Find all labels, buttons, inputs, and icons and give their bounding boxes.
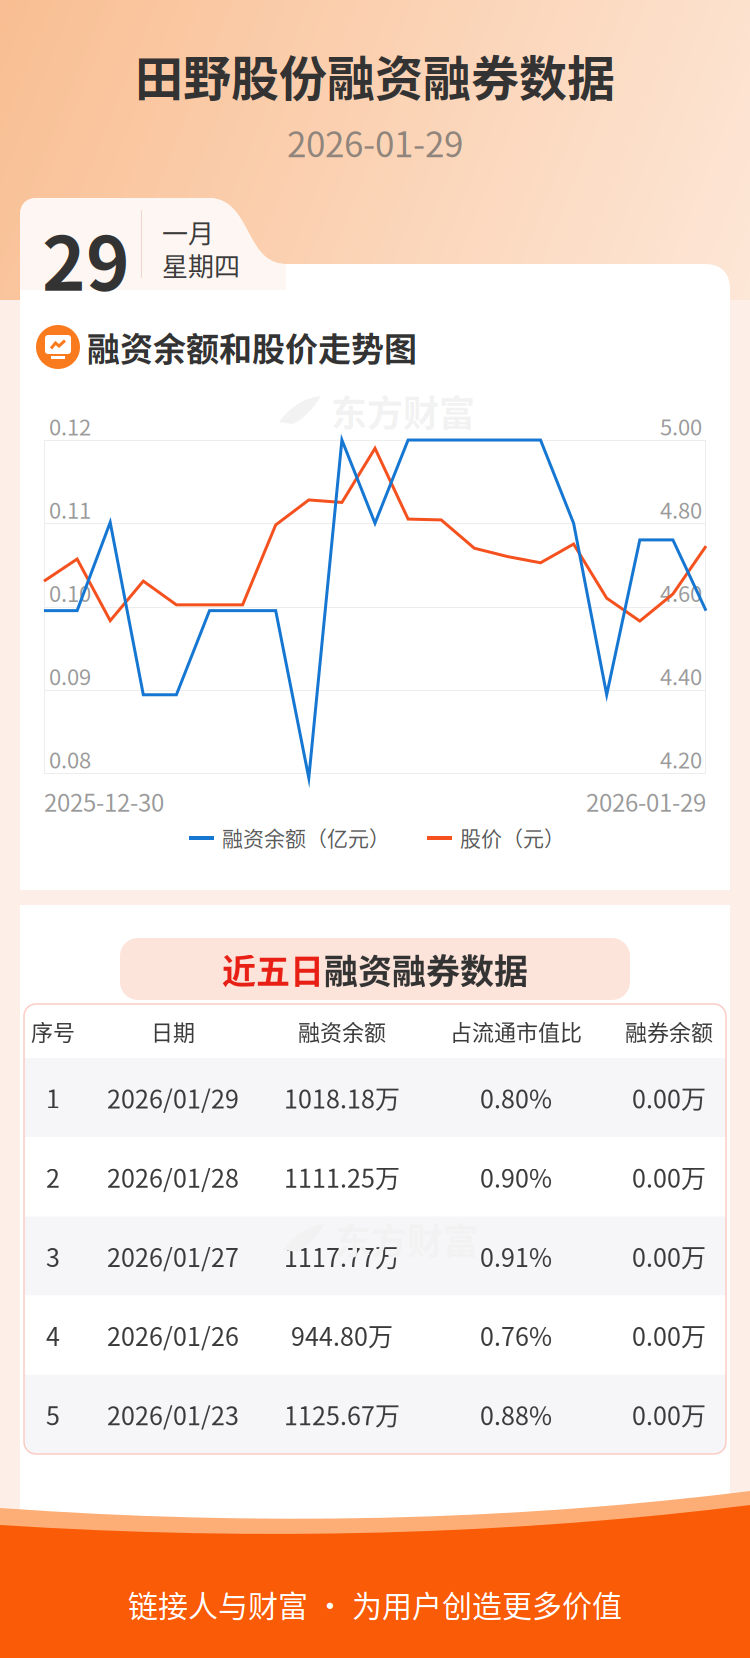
- staticText: 融资融券数据: [324, 944, 528, 994]
- staticText: 1111.25万: [284, 1159, 400, 1195]
- staticText: 0.91%: [480, 1238, 552, 1274]
- staticText: 3: [46, 1238, 60, 1274]
- staticText: 融券余额: [625, 1015, 713, 1047]
- staticText: 2026/01/26: [107, 1317, 239, 1353]
- staticText: 股价（元）: [460, 822, 565, 852]
- staticText: 2025-12-30: [44, 784, 164, 819]
- staticText: 1117.77万: [284, 1238, 400, 1274]
- staticText: 1: [46, 1079, 60, 1116]
- staticText: 0.90%: [480, 1159, 552, 1195]
- staticText: 0.11: [49, 493, 91, 525]
- staticText: 4.60: [660, 576, 702, 608]
- staticText: 0.88%: [480, 1396, 552, 1432]
- staticText: 944.80万: [291, 1317, 393, 1353]
- staticText: 4.20: [660, 743, 702, 775]
- staticText: 2026/01/23: [107, 1396, 239, 1432]
- staticText: 4: [46, 1317, 60, 1353]
- staticText: 0.76%: [480, 1317, 552, 1353]
- staticText: 0.00万: [632, 1238, 706, 1274]
- staticText: 0.80%: [480, 1079, 552, 1116]
- staticText: 1018.18万: [284, 1079, 400, 1116]
- staticText: 融资余额: [298, 1015, 386, 1047]
- staticText: 一月: [162, 213, 214, 251]
- staticText: 占流通市值比: [450, 1015, 582, 1047]
- staticText: 2026-01-29: [287, 117, 463, 167]
- staticText: 东方财富: [331, 385, 475, 437]
- staticText: 0.00万: [632, 1079, 706, 1116]
- staticText: 日期: [151, 1015, 195, 1047]
- staticText: 序号: [31, 1015, 75, 1047]
- staticText: 2: [46, 1159, 60, 1195]
- staticText: 4.80: [660, 493, 702, 525]
- staticText: 29: [42, 205, 130, 312]
- staticText: 田野股份融资融券数据: [135, 40, 615, 110]
- staticText: 5: [46, 1396, 60, 1432]
- staticText: 2026/01/28: [107, 1159, 239, 1195]
- staticText: 0.10: [49, 576, 91, 608]
- staticText: 1125.67万: [284, 1396, 400, 1432]
- staticText: 0.00万: [632, 1317, 706, 1353]
- staticText: 0.12: [49, 410, 91, 442]
- staticText: 0.00万: [632, 1396, 706, 1432]
- staticText: 4.40: [660, 660, 702, 692]
- staticText: 2026-01-29: [586, 784, 706, 819]
- staticText: 2026/01/27: [107, 1238, 239, 1274]
- staticText: 0.08: [49, 743, 91, 775]
- staticText: 融资余额和股价走势图: [87, 323, 417, 371]
- staticText: 东方财富: [335, 1213, 479, 1265]
- staticText: 2026/01/29: [107, 1079, 239, 1116]
- staticText: 链接人与财富 · 为用户创造更多价值: [128, 1582, 622, 1626]
- staticText: 0.09: [49, 660, 91, 692]
- staticText: 0.00万: [632, 1159, 706, 1195]
- staticText: 5.00: [660, 410, 702, 442]
- staticText: 星期四: [162, 246, 240, 284]
- staticText: 融资余额（亿元）: [222, 822, 390, 852]
- staticText: 近五日: [222, 944, 324, 994]
